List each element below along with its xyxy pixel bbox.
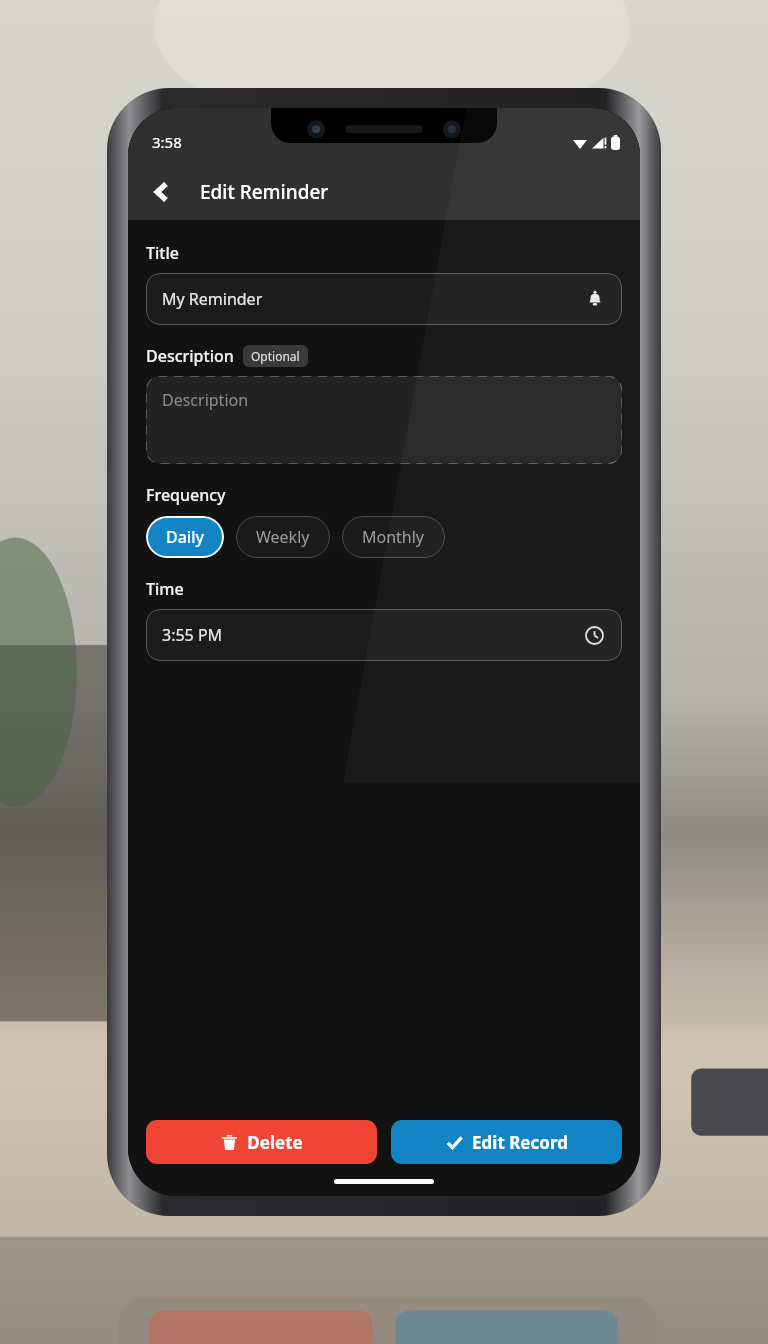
button[interactable]: Back	[140, 170, 184, 214]
other: Pick time	[585, 626, 604, 645]
staticText: Time	[146, 578, 184, 600]
button[interactable]: 3:55 PM	[146, 609, 622, 661]
button[interactable]: Description	[146, 376, 622, 464]
button[interactable]: Monthly	[342, 516, 445, 558]
staticText: 3:55 PM	[162, 624, 223, 646]
staticText: 3:58	[152, 132, 182, 152]
staticText: Weekly	[256, 526, 310, 548]
staticText: Monthly	[362, 526, 425, 548]
staticText: Description	[162, 389, 249, 411]
staticText: Title	[146, 242, 179, 264]
staticText: Daily	[166, 526, 204, 548]
other: Notification	[586, 290, 604, 308]
button[interactable]: Delete	[146, 1120, 377, 1164]
staticText: Edit Reminder	[200, 179, 329, 205]
staticText: Description	[146, 345, 234, 367]
button[interactable]: My Reminder	[146, 273, 622, 325]
staticText: Delete	[247, 1131, 303, 1154]
staticText: Optional	[251, 348, 300, 364]
button[interactable]: Edit Record	[391, 1120, 622, 1164]
button[interactable]: Weekly	[236, 516, 330, 558]
staticText: Edit Record	[472, 1131, 568, 1154]
button[interactable]: Daily	[146, 516, 224, 558]
staticText: My Reminder	[162, 288, 263, 310]
staticText: Frequency	[146, 484, 226, 506]
